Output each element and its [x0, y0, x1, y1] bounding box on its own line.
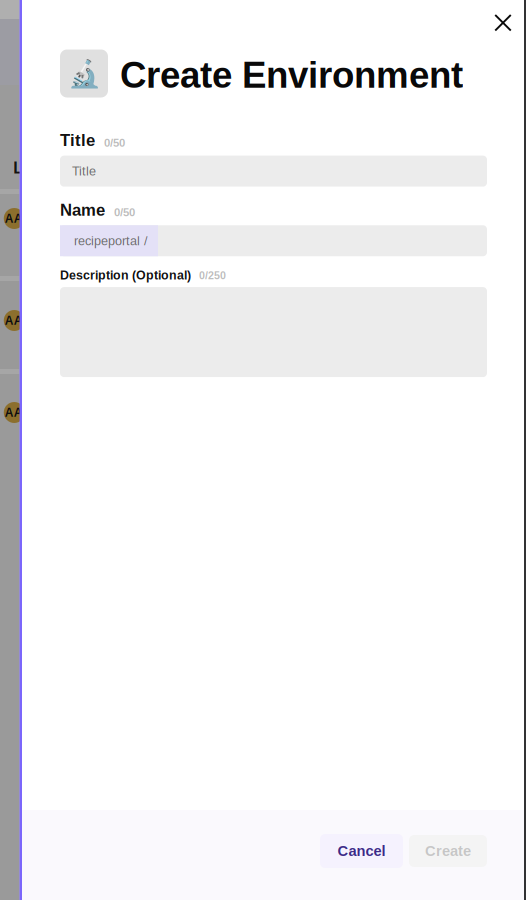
button[interactable]: Create: [409, 835, 487, 867]
staticText: recipeportal /: [74, 234, 148, 248]
staticText: L: [13, 159, 23, 177]
staticText: Title: [60, 131, 95, 150]
staticText: AA: [5, 314, 23, 327]
staticText: AA: [5, 406, 23, 419]
button[interactable]: Cancel: [320, 834, 403, 868]
staticText: 0/250: [199, 270, 226, 282]
staticText: Cancel: [337, 843, 385, 859]
staticText: Name: [60, 201, 105, 219]
button[interactable]: Close: [488, 8, 518, 38]
staticText: 🔬: [67, 58, 100, 89]
staticText: 0/50: [104, 136, 125, 149]
staticText: Create Environment: [120, 54, 463, 95]
staticText: AA: [5, 212, 23, 225]
staticText: 0/50: [114, 206, 135, 219]
staticText: Create: [425, 843, 471, 859]
staticText: Description (Optional): [60, 268, 191, 282]
staticText: Title: [72, 164, 96, 178]
